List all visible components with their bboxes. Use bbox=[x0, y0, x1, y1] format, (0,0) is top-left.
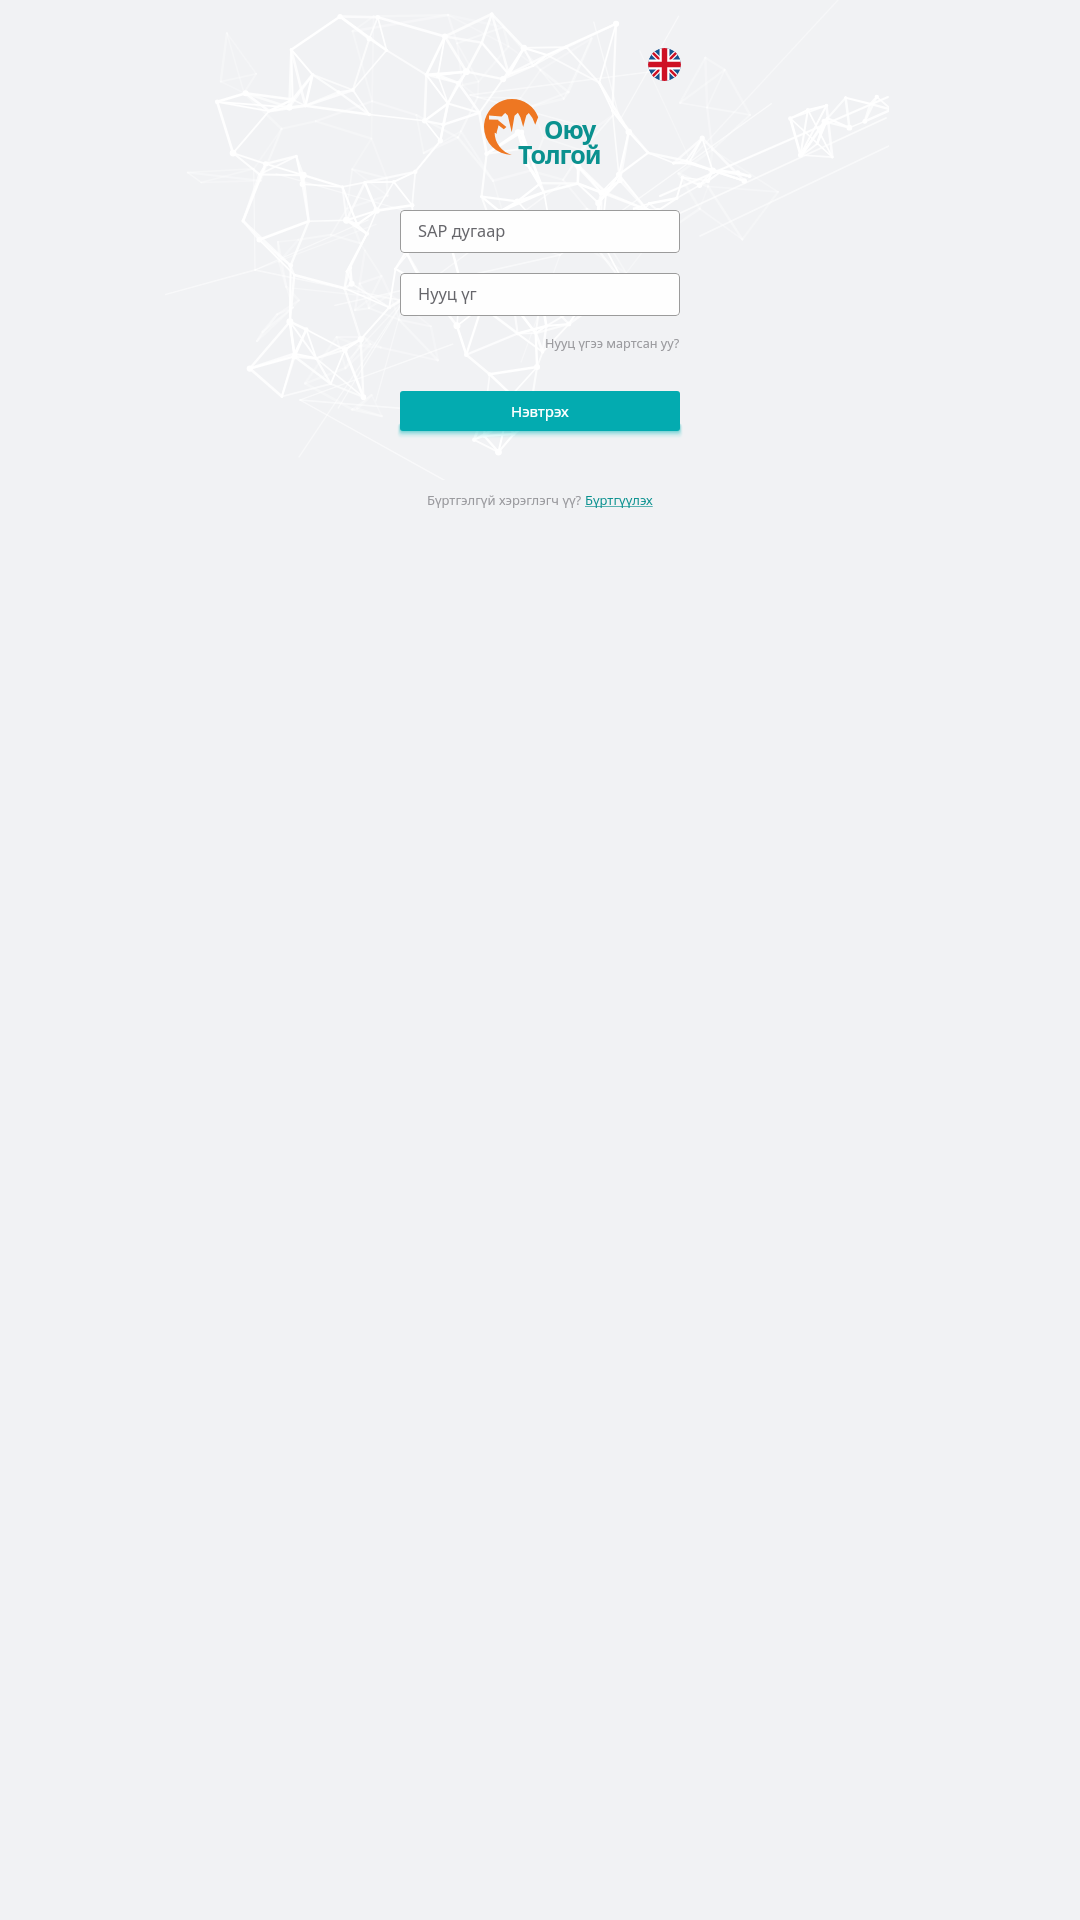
staticText: SAP дугаар bbox=[418, 219, 506, 241]
staticText: Нэвтрэх bbox=[511, 401, 569, 421]
staticText: Бүртгүүлэх bbox=[585, 491, 653, 509]
staticText: Бүртгэлгүй хэрэглэгч үү? bbox=[427, 491, 585, 509]
staticText: Толгой bbox=[518, 137, 601, 171]
button[interactable]: Нууц үгээ мартсан уу? bbox=[545, 331, 680, 354]
button[interactable]: SAP дугаар bbox=[400, 210, 680, 253]
button[interactable]: Нууц үг bbox=[400, 273, 680, 316]
button[interactable]: Бүртгүүлэх bbox=[585, 491, 653, 509]
staticText: Нууц үг bbox=[418, 282, 477, 304]
staticText: Нууц үгээ мартсан уу? bbox=[545, 334, 680, 351]
button[interactable]: Change language bbox=[648, 48, 681, 81]
button[interactable]: Нэвтрэх bbox=[400, 391, 680, 431]
staticText: Оюу bbox=[544, 112, 596, 146]
